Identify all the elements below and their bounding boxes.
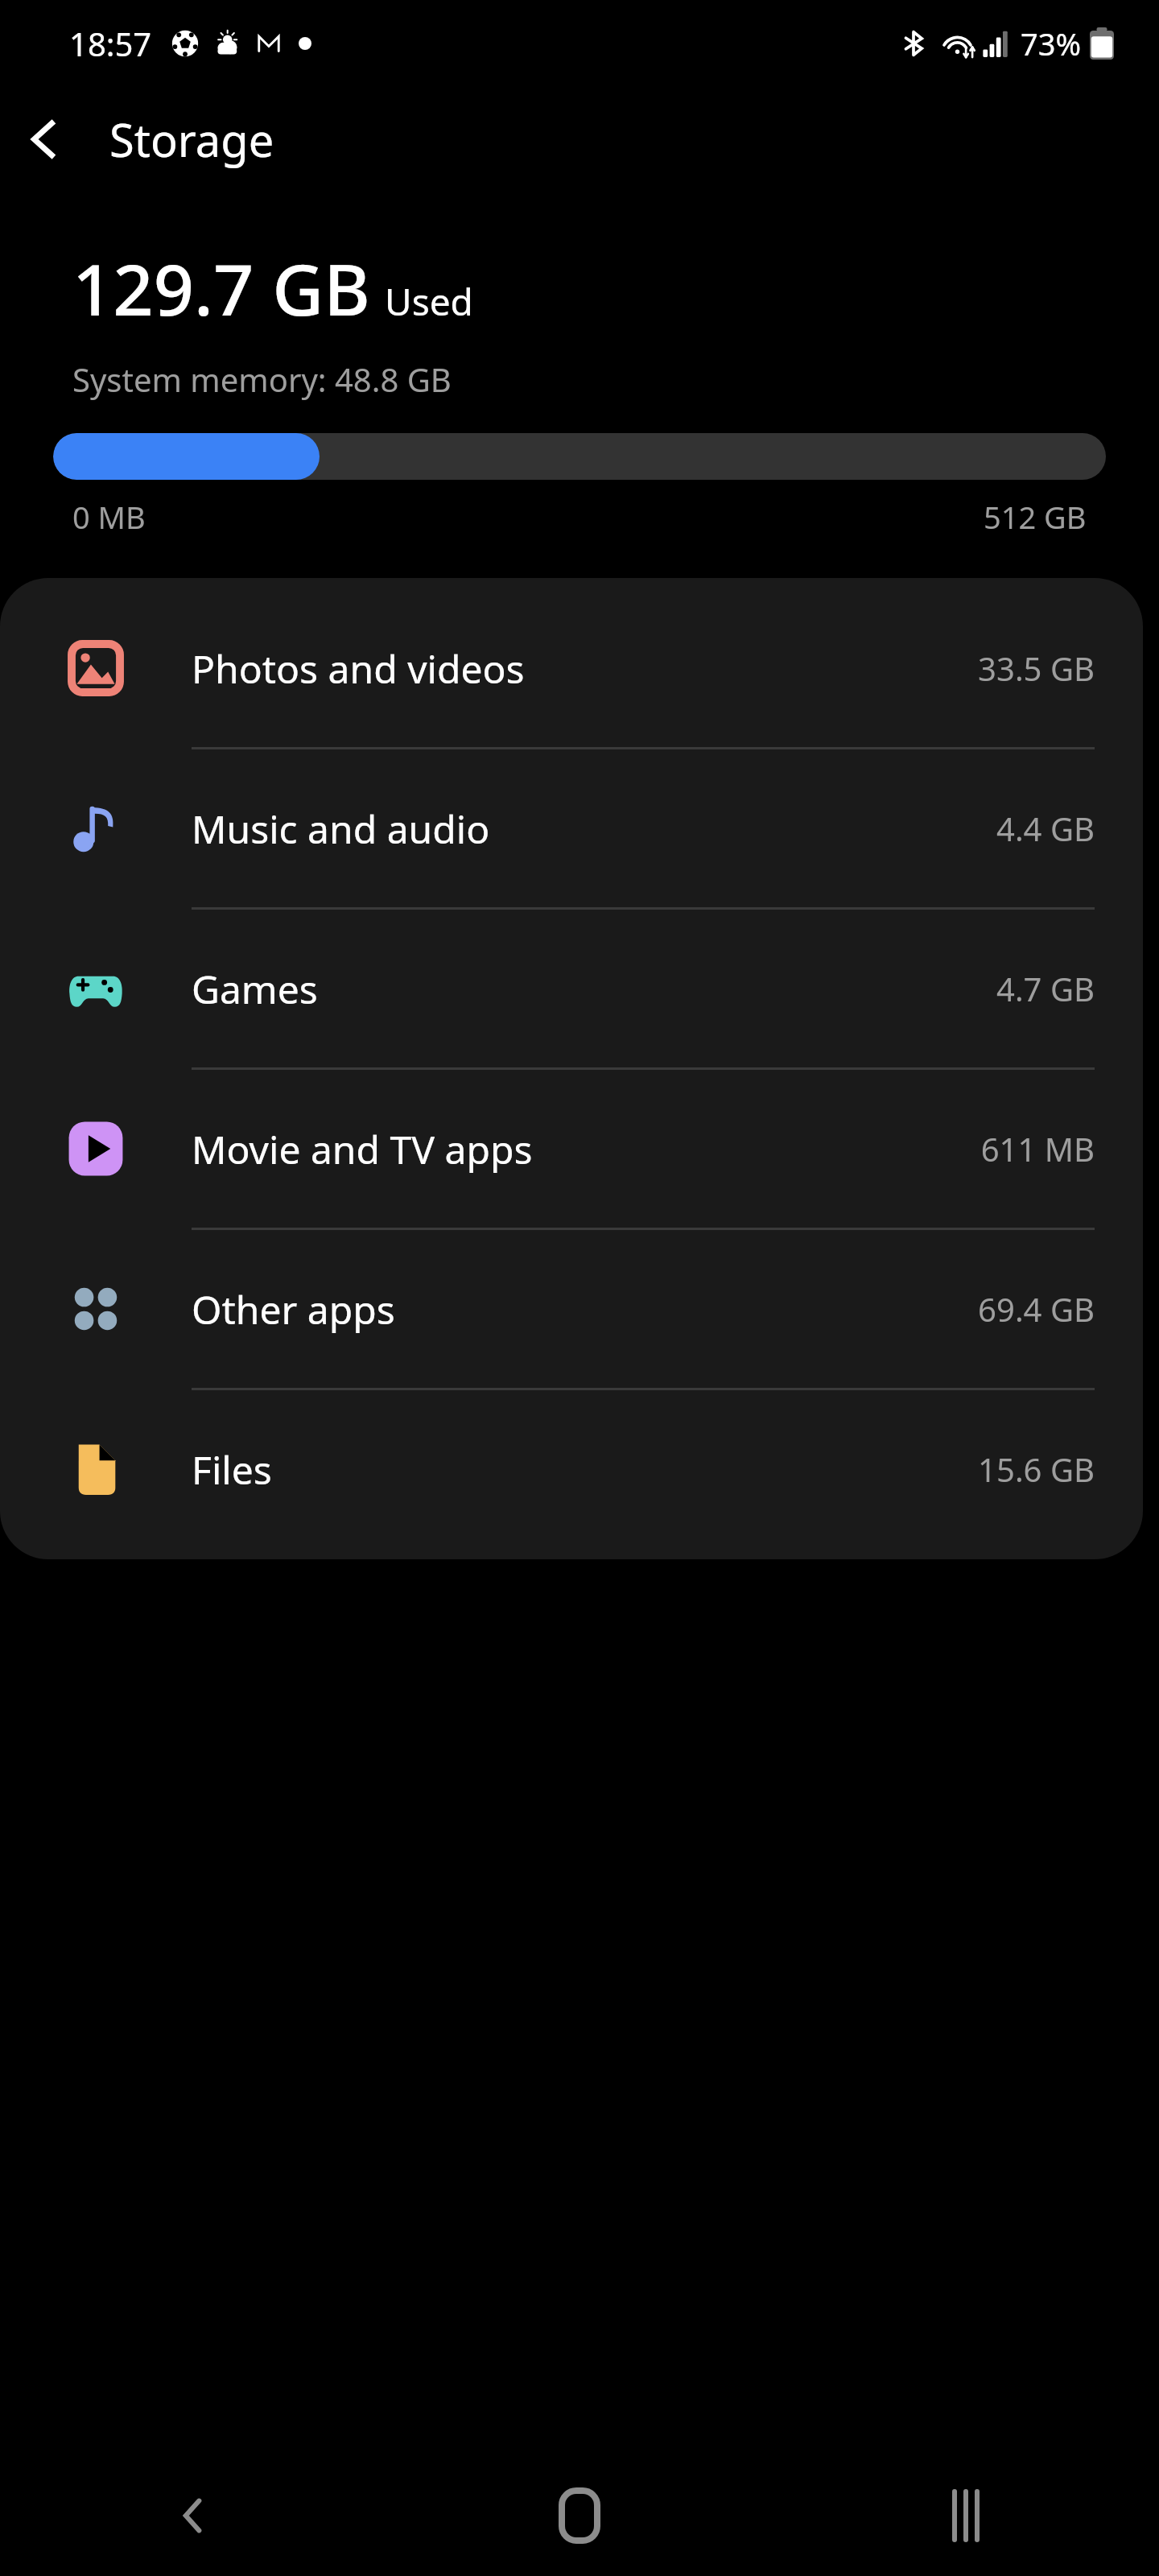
button[interactable]: Photos and videos bbox=[0, 589, 1143, 747]
staticText: 4.7 GB bbox=[996, 967, 1095, 1010]
staticText: Photos and videos bbox=[192, 642, 525, 695]
staticText: 611 MB bbox=[980, 1127, 1095, 1170]
staticText: 0 MB bbox=[72, 496, 146, 538]
staticText: Games bbox=[192, 963, 318, 1015]
staticText: 69.4 GB bbox=[978, 1287, 1095, 1331]
staticText: 15.6 GB bbox=[978, 1447, 1095, 1491]
staticText: Movie and TV apps bbox=[192, 1123, 533, 1175]
button[interactable]: Other apps bbox=[0, 1230, 1143, 1388]
staticText: Music and audio bbox=[192, 803, 490, 855]
button[interactable]: Movie and TV apps bbox=[0, 1070, 1143, 1228]
staticText: System memory: 48.8 GB bbox=[72, 357, 452, 401]
staticText: Storage bbox=[109, 109, 274, 170]
button[interactable]: Recent apps bbox=[773, 2455, 1159, 2576]
button[interactable]: Games bbox=[0, 910, 1143, 1067]
staticText: Files bbox=[192, 1443, 272, 1496]
staticText: 4.4 GB bbox=[996, 807, 1095, 850]
staticText: 18:57 bbox=[69, 22, 152, 65]
button[interactable]: Back bbox=[0, 2455, 386, 2576]
button[interactable]: Back bbox=[0, 95, 89, 184]
button[interactable]: Home bbox=[386, 2455, 773, 2576]
button[interactable]: Files bbox=[0, 1390, 1143, 1548]
staticText: Used bbox=[385, 276, 473, 327]
staticText: Other apps bbox=[192, 1283, 395, 1335]
staticText: 512 GB bbox=[984, 496, 1087, 538]
staticText: 33.5 GB bbox=[978, 646, 1095, 690]
staticText: 73% bbox=[1021, 23, 1082, 64]
button[interactable]: Music and audio bbox=[0, 749, 1143, 907]
staticText: 129.7 GB bbox=[72, 240, 370, 336]
